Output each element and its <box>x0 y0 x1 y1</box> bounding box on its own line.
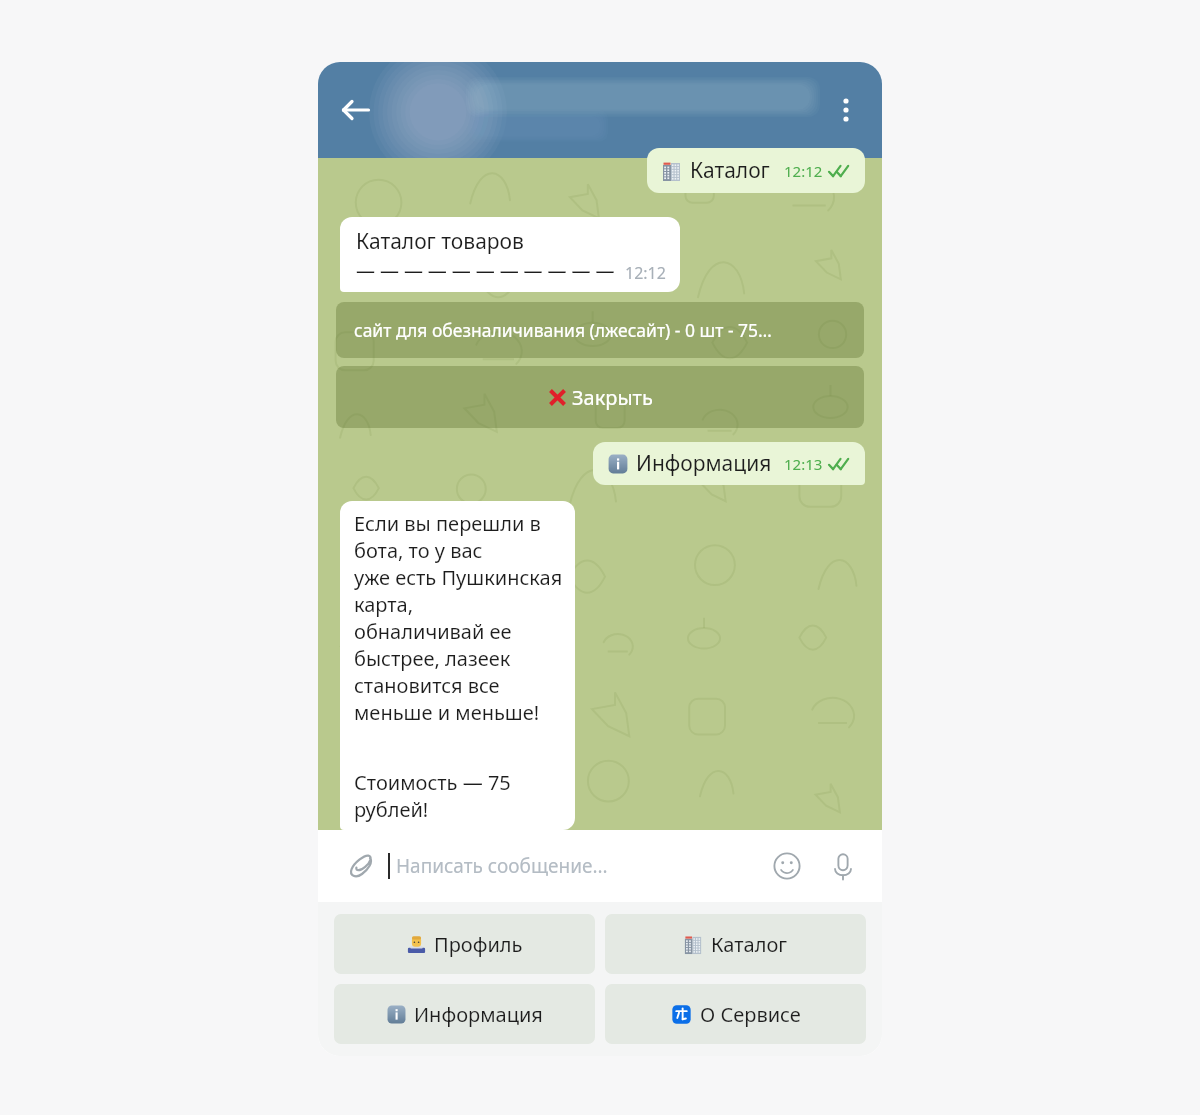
staticText: Каталог <box>690 156 770 185</box>
staticText: Информация <box>414 1001 543 1028</box>
staticText: Профиль <box>434 931 523 958</box>
button[interactable]: Если вы перешли в бота, то у вас <box>340 501 575 830</box>
button[interactable]: Профиль <box>334 914 595 974</box>
staticText: Закрыть <box>572 384 653 411</box>
staticText: — — — — — — — — — — — <box>356 258 615 284</box>
button[interactable]: More options <box>824 88 868 132</box>
staticText: Стоимость — 75 рублей! <box>354 769 563 823</box>
staticText: сайт для обезналичивания (лжесайт) - 0 ш… <box>354 318 772 342</box>
button[interactable]: Информация <box>334 984 595 1044</box>
staticText: Написать сообщение... <box>396 853 608 879</box>
button[interactable]: Каталог товаров <box>340 217 680 292</box>
staticText: уже есть Пушкинская карта, <box>354 564 563 618</box>
button[interactable]: Каталог <box>605 914 866 974</box>
button[interactable]: О Сервисе <box>605 984 866 1044</box>
staticText: становится все меньше и меньше! <box>354 672 563 726</box>
staticText: О Сервисе <box>700 1001 801 1028</box>
staticText: Каталог товаров <box>356 227 524 256</box>
button[interactable]: Voice message <box>822 845 864 887</box>
staticText: 12:12 <box>625 262 666 284</box>
button[interactable]: сайт для обезналичивания (лжесайт) - 0 ш… <box>336 302 864 358</box>
button[interactable]: Информация <box>593 442 865 485</box>
button[interactable]: Каталог <box>647 148 865 193</box>
staticText: Если вы перешли в бота, то у вас <box>354 510 563 564</box>
staticText: 12:13 <box>784 454 823 474</box>
button[interactable]: Emoji <box>766 845 808 887</box>
staticText: Информация <box>636 449 772 478</box>
staticText: 12:12 <box>784 161 823 181</box>
staticText: обналичивай ее быстрее, лазеек <box>354 618 563 672</box>
button[interactable]: Закрыть <box>336 366 864 428</box>
staticText: Каталог <box>711 931 788 958</box>
button[interactable]: Back <box>332 86 380 134</box>
button[interactable]: Attach <box>342 846 382 886</box>
